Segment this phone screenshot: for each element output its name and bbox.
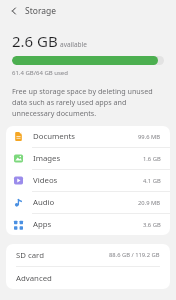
staticText: Documents [33, 131, 76, 142]
staticText: 2.6 GB [12, 31, 58, 51]
staticText: 20.9 MB [138, 199, 161, 207]
staticText: Storage [25, 5, 57, 17]
button[interactable]: Documents [6, 126, 170, 147]
button[interactable]: Back [7, 4, 21, 18]
button[interactable]: Advanced [6, 267, 170, 289]
button[interactable]: Apps [6, 214, 170, 235]
staticText: Images [33, 153, 61, 164]
staticText: Free up storage space by deleting unused… [12, 86, 164, 118]
staticText: 3.6 GB [143, 221, 161, 229]
staticText: 99.6 MB [138, 133, 161, 141]
staticText: Audio [33, 197, 55, 208]
staticText: Videos [33, 175, 58, 186]
button[interactable]: Videos [6, 170, 170, 191]
button[interactable]: Audio [6, 192, 170, 213]
staticText: 4.1 GB [143, 177, 161, 185]
staticText: available [60, 40, 87, 49]
staticText: Apps [33, 219, 52, 230]
button[interactable]: SD card [6, 244, 170, 266]
staticText: Advanced [16, 273, 52, 284]
button[interactable]: Images [6, 148, 170, 169]
staticText: SD card [16, 250, 44, 261]
staticText: 61.4 GB/64 GB used [12, 69, 68, 77]
staticText: 1.6 GB [143, 155, 161, 163]
staticText: 88.6 GB / 119.2 GB [109, 251, 160, 259]
